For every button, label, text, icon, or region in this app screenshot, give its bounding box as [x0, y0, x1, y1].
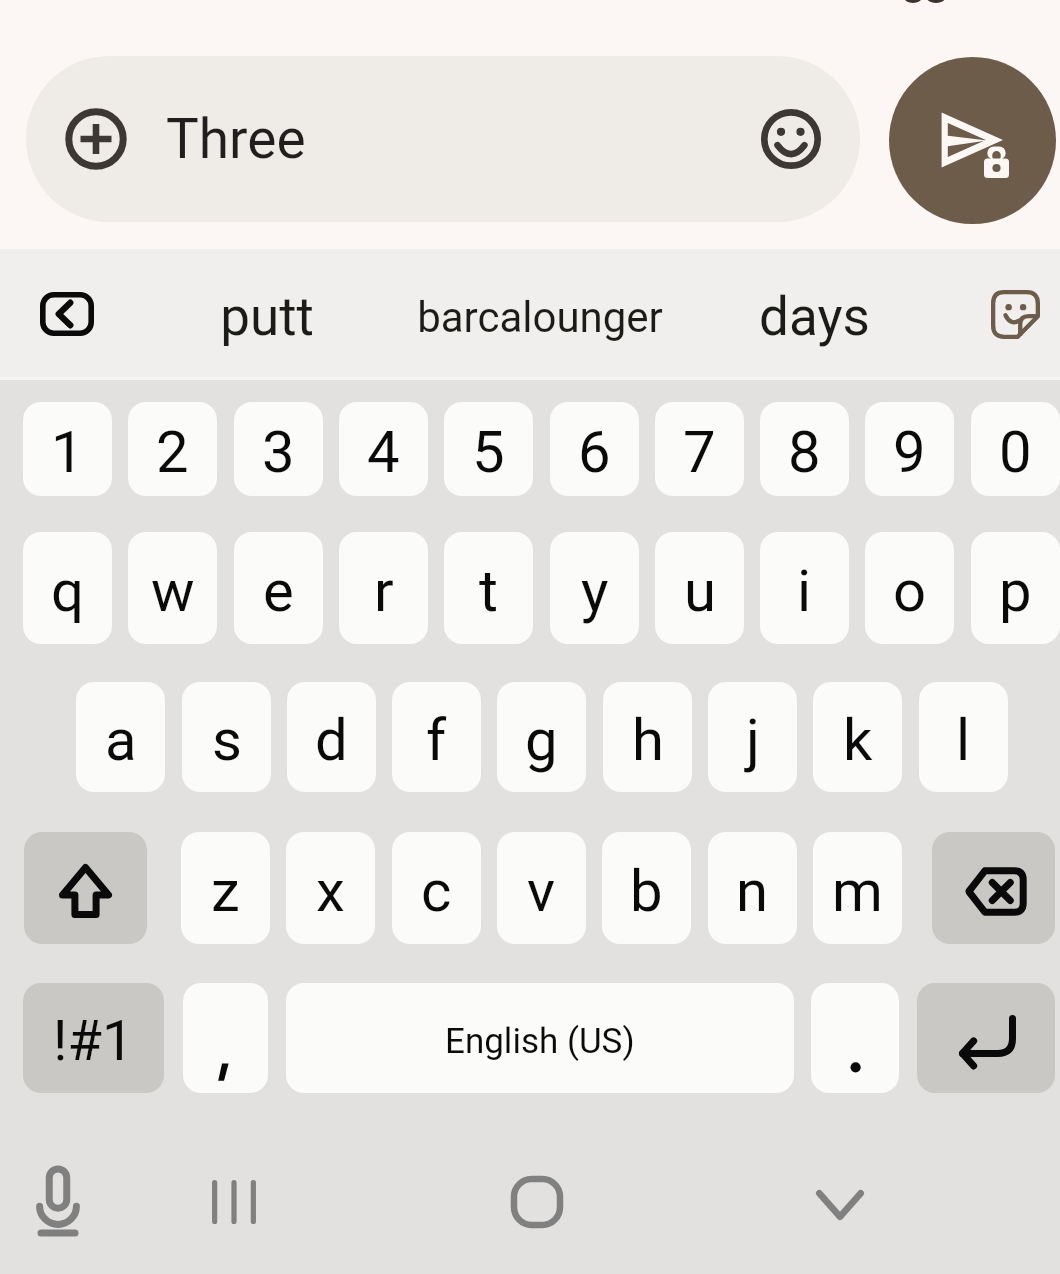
button[interactable]: 3	[234, 402, 323, 496]
staticText: p	[999, 557, 1032, 625]
button[interactable]: Recent apps	[184, 1158, 284, 1246]
button[interactable]: Hide keyboard	[790, 1161, 890, 1249]
button[interactable]: e	[234, 532, 323, 644]
staticText: v	[527, 857, 556, 925]
staticText: g	[525, 706, 558, 774]
button[interactable]: x	[286, 832, 375, 944]
staticText: 0	[999, 418, 1032, 486]
button[interactable]: Voice input	[8, 1158, 108, 1246]
button[interactable]: days	[654, 270, 974, 364]
button[interactable]: b	[602, 832, 691, 944]
button[interactable]: n	[708, 832, 797, 944]
staticText: a	[105, 706, 137, 774]
staticText: Three	[166, 107, 306, 171]
button[interactable]: Add attachment	[26, 56, 166, 222]
staticText: m	[832, 857, 883, 925]
button[interactable]: 8	[760, 402, 849, 496]
button[interactable]: 5	[444, 402, 533, 496]
button[interactable]: z	[181, 832, 270, 944]
staticText: English (US)	[445, 1021, 635, 1062]
button[interactable]: r	[339, 532, 428, 644]
staticText: h	[632, 706, 664, 774]
staticText: x	[316, 857, 345, 925]
button[interactable]: putt	[107, 270, 427, 364]
button[interactable]: l	[919, 682, 1008, 792]
button[interactable]: i	[760, 532, 849, 644]
button[interactable]: barcalounger	[380, 270, 700, 364]
staticText: putt	[220, 286, 314, 348]
button[interactable]: Stickers	[991, 290, 1040, 339]
staticText: n	[736, 857, 769, 925]
staticText: 4	[367, 418, 400, 486]
staticText: c	[421, 857, 452, 925]
staticText: d	[315, 706, 348, 774]
staticText: !#1	[53, 1008, 134, 1074]
staticText: 6	[578, 418, 611, 486]
staticText: 2	[156, 418, 189, 486]
staticText: t	[479, 557, 498, 625]
staticText: k	[843, 706, 873, 774]
button[interactable]: t	[444, 532, 533, 644]
staticText: w	[151, 557, 195, 625]
button[interactable]: Add attachment	[26, 56, 860, 222]
button[interactable]: Home	[487, 1158, 587, 1246]
button[interactable]: Backspace	[932, 832, 1055, 944]
staticText: f	[426, 706, 447, 774]
staticText: z	[211, 857, 240, 925]
button[interactable]: Enter	[917, 983, 1055, 1093]
button[interactable]: y	[550, 532, 639, 644]
staticText: u	[684, 557, 716, 625]
button[interactable]: q	[23, 532, 112, 644]
staticText: b	[630, 857, 663, 925]
button[interactable]: 0	[971, 402, 1060, 496]
staticText: y	[581, 557, 609, 625]
button[interactable]: !#1	[23, 983, 164, 1093]
button[interactable]: w	[128, 532, 217, 644]
button[interactable]: c	[392, 832, 481, 944]
button[interactable]: p	[971, 532, 1060, 644]
button[interactable]: 1	[23, 402, 112, 496]
button[interactable]: Period	[811, 983, 899, 1093]
staticText: s	[212, 706, 242, 774]
button[interactable]: o	[865, 532, 954, 644]
button[interactable]: s	[182, 682, 271, 792]
staticText: l	[956, 706, 971, 774]
staticText: days	[759, 286, 870, 348]
staticText: 1	[51, 418, 84, 486]
staticText: j	[746, 706, 760, 774]
button[interactable]: Emoji	[722, 56, 860, 222]
staticText: 7	[683, 418, 716, 486]
button[interactable]: 7	[655, 402, 744, 496]
button[interactable]: j	[708, 682, 797, 792]
staticText: 9	[893, 418, 926, 486]
button[interactable]: Comma	[183, 983, 268, 1093]
staticText: q	[51, 557, 84, 625]
staticText: 8	[788, 418, 821, 486]
staticText: 5	[472, 418, 505, 486]
button[interactable]: d	[287, 682, 376, 792]
staticText: e	[263, 557, 294, 625]
button[interactable]: Send secure message	[889, 57, 1056, 224]
button[interactable]: Shift	[24, 832, 147, 944]
button[interactable]: u	[655, 532, 744, 644]
staticText: o	[893, 557, 927, 625]
button[interactable]: f	[392, 682, 481, 792]
staticText: r	[374, 557, 394, 625]
button[interactable]: m	[813, 832, 902, 944]
button[interactable]: v	[497, 832, 586, 944]
button[interactable]: g	[497, 682, 586, 792]
button[interactable]: k	[813, 682, 902, 792]
button[interactable]: h	[603, 682, 692, 792]
button[interactable]: a	[76, 682, 165, 792]
button[interactable]: 2	[128, 402, 217, 496]
staticText: i	[797, 557, 812, 625]
button[interactable]: English (US)	[286, 983, 794, 1093]
staticText: barcalounger	[417, 293, 663, 342]
button[interactable]: 4	[339, 402, 428, 496]
button[interactable]: 9	[865, 402, 954, 496]
staticText: 3	[262, 418, 295, 486]
button[interactable]: Previous suggestions	[40, 292, 94, 336]
button[interactable]: 6	[550, 402, 639, 496]
